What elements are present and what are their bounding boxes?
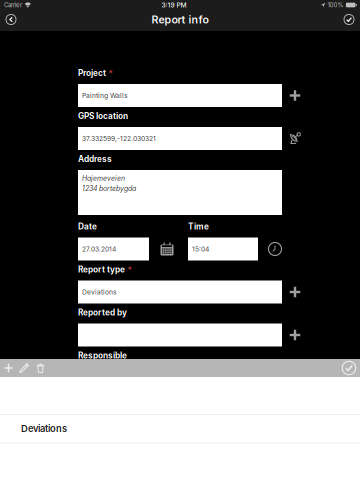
button[interactable]: Get GPS location bbox=[285, 127, 305, 150]
staticText: 3:19 PM bbox=[161, 1, 186, 9]
staticText: 15:04 bbox=[192, 245, 209, 253]
staticText: Report info bbox=[151, 13, 208, 26]
staticText: * bbox=[127, 265, 131, 274]
staticText: Time bbox=[188, 221, 209, 231]
staticText: Reported by bbox=[78, 307, 127, 317]
staticText: 37.332599,-122.030321 bbox=[82, 134, 156, 143]
button[interactable]: Confirm bbox=[341, 359, 357, 377]
staticText: Deviations bbox=[21, 423, 67, 434]
button[interactable]: Pick time bbox=[265, 237, 285, 260]
staticText: Carrier bbox=[4, 1, 22, 9]
staticText: Deviations bbox=[82, 288, 117, 296]
staticText: Report type bbox=[78, 264, 125, 274]
staticText: Date bbox=[78, 221, 97, 231]
staticText: Responsible bbox=[78, 350, 127, 360]
staticText: Address bbox=[78, 154, 112, 164]
button[interactable]: Back bbox=[1, 9, 21, 29]
button[interactable]: Save bbox=[339, 9, 359, 29]
staticText: 27.03.2014 bbox=[82, 245, 116, 253]
button[interactable]: Add project bbox=[285, 84, 305, 107]
staticText: 1234 bortebygda bbox=[82, 184, 136, 193]
button[interactable]: Add report type bbox=[285, 280, 305, 303]
button[interactable]: Add reporter bbox=[285, 323, 305, 346]
staticText: GPS location bbox=[78, 111, 128, 121]
staticText: Project bbox=[78, 68, 106, 78]
staticText: Hajemeveien bbox=[82, 174, 125, 182]
staticText: * bbox=[108, 68, 112, 78]
staticText: 100% bbox=[327, 1, 343, 9]
button[interactable]: Pick date bbox=[157, 237, 177, 260]
button[interactable]: Add deviation bbox=[0, 359, 16, 377]
button[interactable]: Delete deviation bbox=[32, 359, 48, 377]
button[interactable]: Edit deviation bbox=[16, 359, 32, 377]
staticText: Painting Walls bbox=[82, 91, 128, 100]
